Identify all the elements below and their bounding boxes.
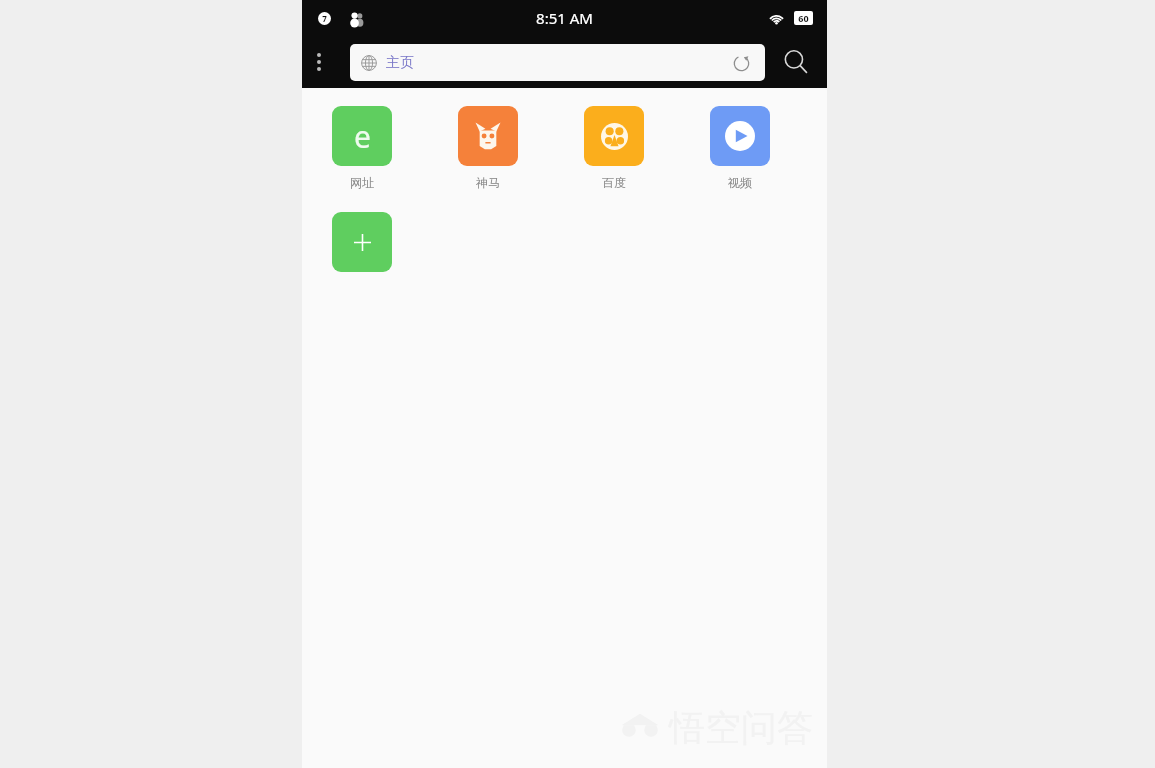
- staticText: 60: [798, 12, 809, 24]
- staticText: 百度: [602, 175, 626, 190]
- button[interactable]: 主页: [350, 44, 765, 81]
- button[interactable]: 视频: [710, 106, 770, 190]
- staticText: 网址: [350, 175, 374, 190]
- button[interactable]: e: [332, 106, 392, 190]
- staticText: 神马: [476, 175, 500, 190]
- staticText: 7: [322, 13, 327, 24]
- staticText: e: [354, 116, 371, 157]
- button[interactable]: More options: [302, 36, 336, 88]
- staticText: 主页: [386, 54, 414, 72]
- button[interactable]: Reload: [729, 51, 753, 75]
- button[interactable]: 神马: [458, 106, 518, 190]
- staticText: 8:51 AM: [536, 8, 593, 28]
- button[interactable]: 百度: [584, 106, 644, 190]
- staticText: 视频: [728, 175, 752, 190]
- staticText: 悟空问答: [669, 705, 813, 750]
- button[interactable]: Search: [765, 36, 827, 88]
- button[interactable]: Add shortcut: [332, 212, 392, 272]
